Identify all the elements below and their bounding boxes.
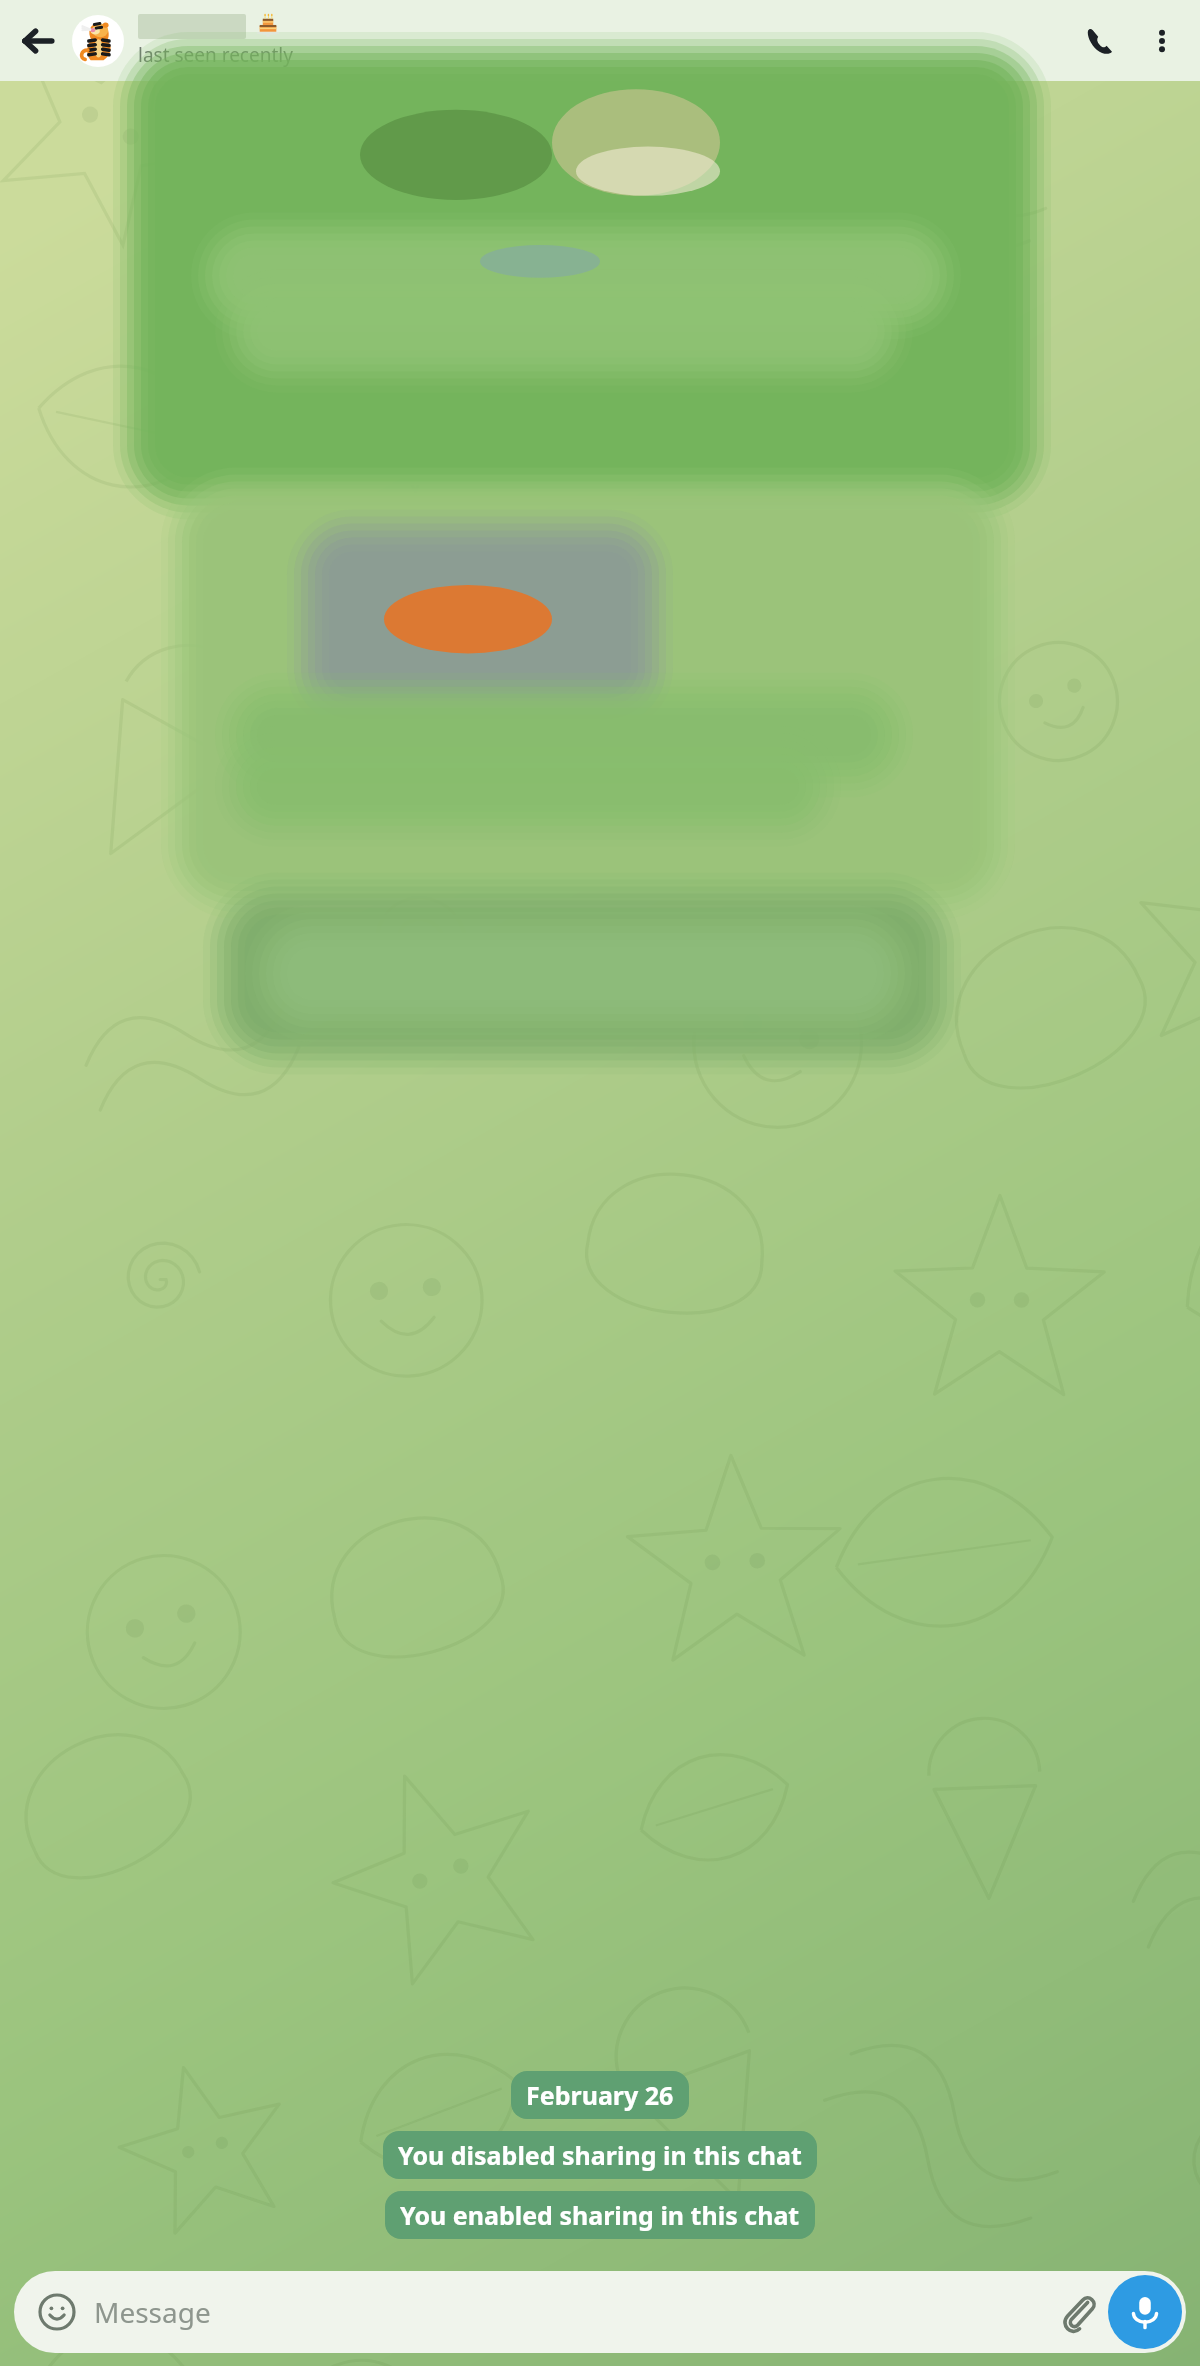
- button[interactable]: Call: [1068, 9, 1132, 73]
- button[interactable]: Emoji: [14, 2271, 1186, 2353]
- button[interactable]: You enabled sharing in this chat: [385, 2191, 815, 2239]
- button[interactable]: February 26: [511, 2071, 689, 2119]
- button[interactable]: Record voice message: [1108, 2275, 1182, 2349]
- button[interactable]: You disabled sharing in this chat: [383, 2131, 817, 2179]
- staticText: February 26: [526, 2078, 674, 2112]
- button[interactable]: Back: [10, 13, 66, 69]
- button[interactable]: last seen recently: [138, 13, 1068, 68]
- staticText: last seen recently: [138, 42, 293, 68]
- button[interactable]: Attach: [1048, 2282, 1108, 2342]
- button[interactable]: Emoji: [34, 2289, 80, 2335]
- staticText: You disabled sharing in this chat: [398, 2138, 802, 2172]
- button[interactable]: More options: [1132, 11, 1192, 71]
- staticText: You enabled sharing in this chat: [400, 2198, 800, 2232]
- button[interactable]: [72, 15, 124, 67]
- staticText: Message: [94, 2293, 211, 2331]
